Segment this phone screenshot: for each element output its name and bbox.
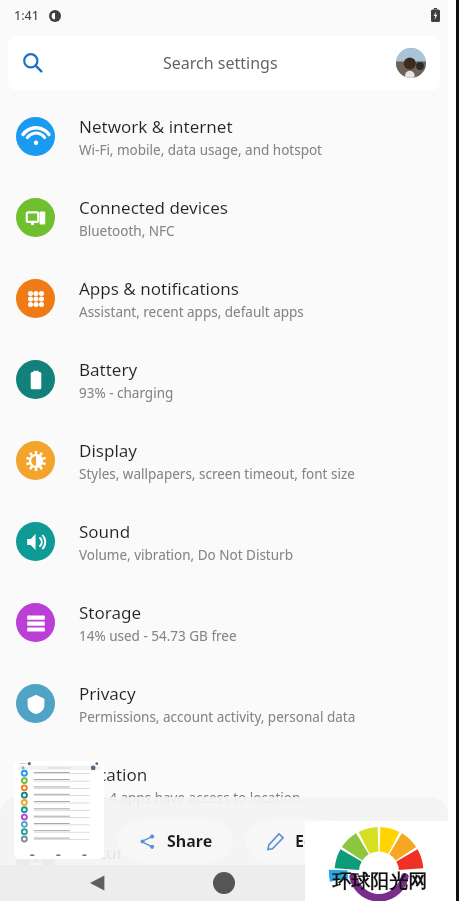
button[interactable]: Network & internet — [0, 96, 459, 177]
button[interactable]: Apps & notifications — [0, 258, 459, 339]
staticText: 93% - charging — [79, 384, 174, 402]
staticText: Wi-Fi, mobile, data usage, and hotspot — [79, 141, 322, 159]
staticText: Network & internet — [79, 115, 233, 138]
button[interactable]: Edit — [246, 819, 346, 863]
button[interactable]: Storage — [0, 582, 459, 663]
staticText: Edit — [295, 830, 326, 852]
staticText: Privacy — [79, 682, 136, 705]
staticText: Bluetooth, NFC — [79, 222, 175, 240]
staticText: Display — [79, 439, 137, 462]
staticText: Apps & notifications — [79, 277, 239, 300]
staticText: Location — [79, 763, 148, 786]
staticText: Assistant, recent apps, default apps — [79, 303, 304, 321]
other: Back — [88, 873, 108, 893]
staticText: Search settings — [163, 52, 278, 74]
staticText: 环球阳光网 — [332, 870, 427, 894]
button[interactable]: Battery — [0, 339, 459, 420]
button[interactable]: Security — [0, 825, 459, 901]
staticText: Permissions, account activity, personal … — [79, 708, 356, 726]
staticText: Storage — [79, 601, 142, 624]
staticText: Share — [167, 830, 213, 852]
button[interactable]: Search — [8, 36, 440, 90]
staticText: Battery — [79, 358, 138, 381]
staticText: Volume, vibration, Do Not Disturb — [79, 546, 293, 564]
button[interactable]: Privacy — [0, 663, 459, 744]
button[interactable]: Display — [0, 420, 459, 501]
other: Search — [22, 52, 44, 74]
staticText: Styles, wallpapers, screen timeout, font… — [79, 465, 355, 483]
staticText: Security — [79, 841, 143, 864]
staticText: Sound — [79, 520, 131, 543]
button[interactable]: Screenshot preview — [14, 761, 104, 859]
staticText: Connected devices — [79, 196, 229, 219]
button[interactable]: Home — [213, 872, 235, 894]
button[interactable]: Location — [0, 744, 459, 825]
staticText: 14% used - 54.73 GB free — [79, 627, 237, 645]
button[interactable]: Account — [396, 48, 426, 78]
button[interactable]: Sound — [0, 501, 459, 582]
staticText: 1:41 — [14, 7, 39, 24]
staticText: Screen lock, fingerprint — [79, 867, 227, 885]
button[interactable]: Connected devices — [0, 177, 459, 258]
staticText: On - 4 apps have access to location — [79, 789, 301, 807]
button[interactable]: Share — [118, 819, 233, 863]
